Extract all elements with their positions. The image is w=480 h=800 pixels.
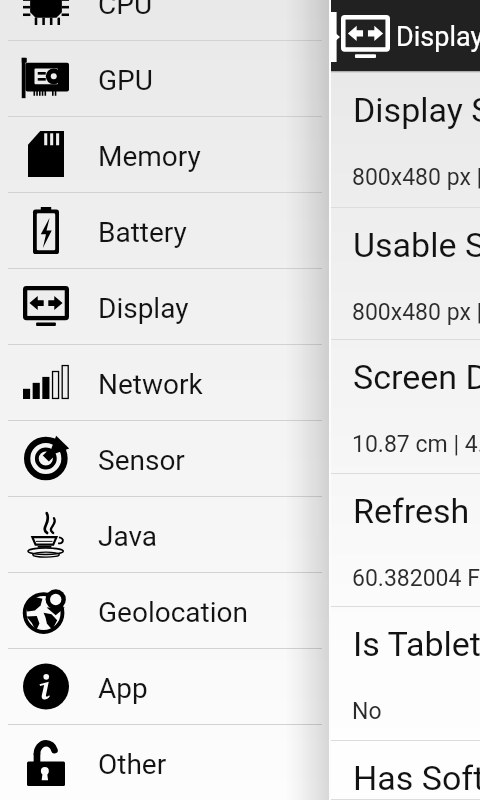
button[interactable]: Screen Diagonal [330, 340, 480, 474]
staticText: Memory [98, 140, 201, 173]
button[interactable]: Refresh Rate [330, 474, 480, 607]
staticText: 10.87 cm | 4.28 in [352, 431, 480, 458]
button[interactable]: Sensor [0, 421, 330, 497]
button[interactable]: Java [0, 497, 330, 573]
staticText: Screen Diagonal [353, 357, 480, 397]
staticText: Java [98, 520, 158, 553]
button[interactable]: Memory [0, 117, 330, 193]
staticText: Geolocation [98, 596, 248, 629]
staticText: App [98, 672, 148, 705]
button[interactable]: Usable Size [330, 208, 480, 340]
button[interactable]: Network [0, 345, 330, 421]
staticText: 800x480 px | 1.0 dpi [352, 164, 480, 191]
button[interactable]: App [0, 649, 330, 725]
staticText: Sensor [98, 444, 185, 477]
button[interactable]: Battery [0, 193, 330, 269]
button[interactable]: GPU [0, 41, 330, 117]
staticText: Refresh Rate [353, 491, 480, 531]
staticText: GPU [98, 64, 153, 97]
staticText: Display Size [353, 90, 480, 130]
staticText: Display [396, 21, 480, 53]
button[interactable]: Display [0, 269, 330, 345]
button[interactable]: Navigate up [330, 0, 352, 71]
button[interactable]: CPU [0, 0, 330, 41]
button[interactable]: Geolocation [0, 573, 330, 649]
staticText: 60.382004 FPS [352, 565, 480, 592]
staticText: Has Software Keys [353, 758, 480, 798]
staticText: CPU [98, 0, 153, 21]
staticText: Usable Size [353, 225, 480, 265]
staticText: No [352, 698, 382, 725]
staticText: Battery [98, 216, 187, 249]
staticText: Is Tablet [353, 624, 480, 664]
button[interactable]: Has Software Keys [330, 741, 480, 800]
staticText: 800x480 px | 1.0 dpi [352, 299, 480, 326]
button[interactable]: Display Size [330, 73, 480, 208]
staticText: Network [98, 368, 203, 401]
staticText: Display [98, 292, 189, 325]
staticText: Other [98, 748, 167, 781]
button[interactable]: Other [0, 725, 330, 800]
button[interactable]: Is Tablet [330, 607, 480, 741]
